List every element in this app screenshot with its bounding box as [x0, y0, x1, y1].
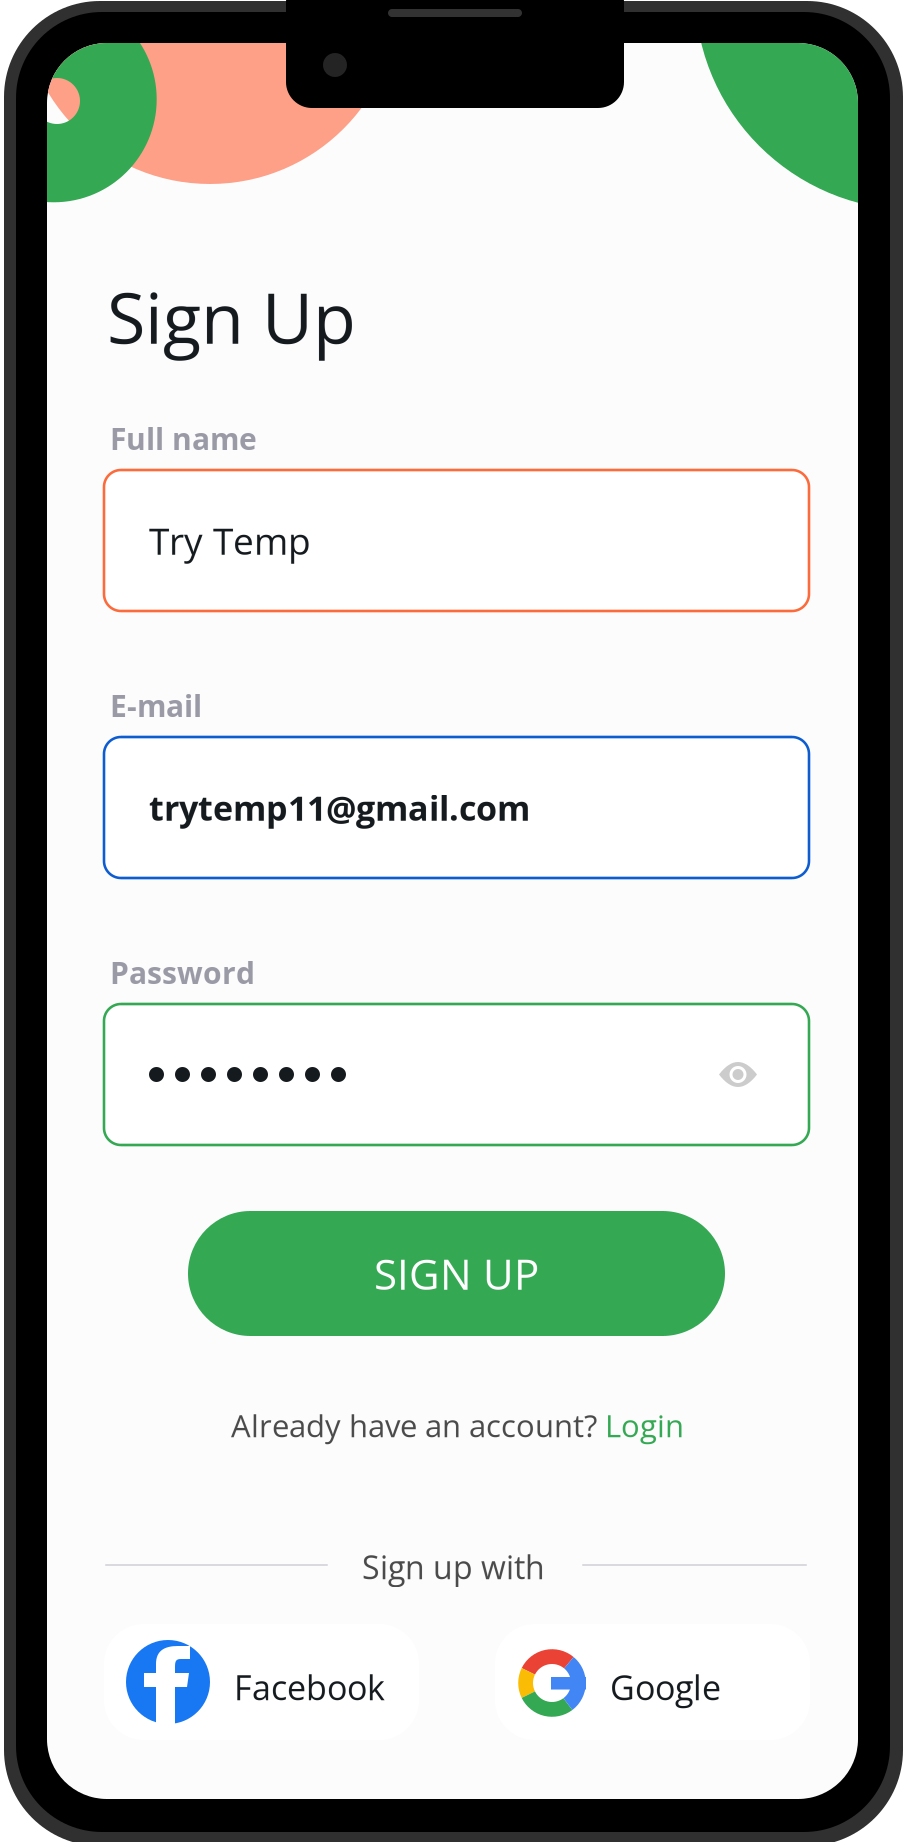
staticText: Try Temp	[149, 515, 311, 566]
staticText: Google	[610, 1664, 721, 1710]
staticText: Password	[110, 952, 255, 993]
staticText: Sign up with	[362, 1545, 545, 1589]
staticText: E-mail	[110, 685, 202, 726]
staticText: Facebook	[234, 1664, 385, 1710]
button[interactable]: SIGN UP	[188, 1211, 725, 1336]
staticText: Already have an account?	[231, 1404, 605, 1446]
staticText: Full name	[110, 418, 257, 459]
staticText: SIGN UP	[374, 1245, 539, 1302]
button[interactable]: Google	[495, 1624, 810, 1740]
button[interactable]: Already have an account?	[231, 1404, 684, 1446]
staticText: trytemp11@gmail.com	[149, 784, 530, 831]
staticText: Sign Up	[107, 269, 356, 364]
button[interactable]: Facebook	[104, 1624, 419, 1740]
staticText: Login	[605, 1404, 684, 1446]
